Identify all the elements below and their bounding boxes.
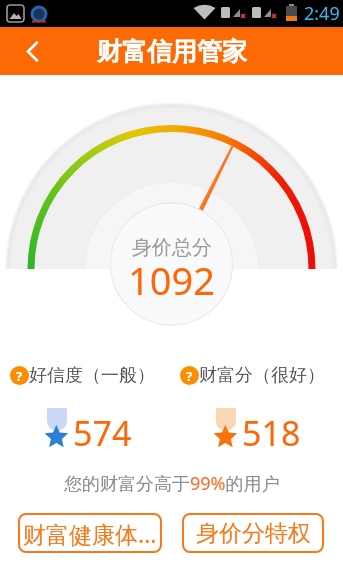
- staticText: ?: [16, 367, 23, 385]
- staticText: 1092: [128, 254, 215, 304]
- button[interactable]: ?: [180, 366, 199, 385]
- staticText: 2:49: [304, 1, 340, 26]
- button[interactable]: ?: [10, 366, 29, 385]
- button[interactable]: 财富健康体...: [18, 513, 162, 553]
- staticText: 身价总分: [132, 235, 212, 260]
- staticText: 好信度（一般）: [29, 364, 155, 387]
- staticText: 574: [73, 410, 132, 450]
- staticText: 财富信用管家: [97, 36, 247, 67]
- staticText: 财富健康体...: [23, 518, 157, 549]
- staticText: 您的财富分高于99%的用户: [64, 471, 280, 495]
- button[interactable]: 身价分特权: [182, 513, 324, 553]
- staticText: 518: [242, 410, 301, 450]
- staticText: ?: [186, 367, 193, 385]
- staticText: 身价分特权: [196, 519, 311, 548]
- staticText: 财富分（很好）: [199, 364, 325, 387]
- button[interactable]: [0, 27, 56, 75]
